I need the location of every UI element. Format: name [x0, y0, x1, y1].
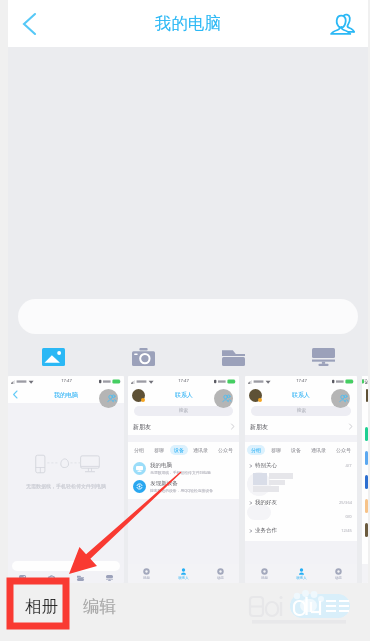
button[interactable]: Screenshot 1 [8, 376, 124, 583]
staticText: 公众号 [218, 447, 233, 453]
staticText: 特别关心 [255, 462, 277, 469]
staticText: 4/7 [345, 463, 352, 468]
staticText: 我的电脑 [155, 13, 221, 34]
button[interactable]: 编辑 [70, 584, 128, 628]
staticText: 设备 [174, 447, 184, 453]
staticText: 业务合作 [255, 527, 277, 534]
staticText: 动态 [217, 576, 224, 580]
staticText: 我的好友 [255, 499, 277, 506]
staticText: 无需数据线，手机轻松传文件到电脑 [150, 470, 211, 475]
button[interactable]: Computer [278, 348, 368, 366]
staticText: 12/45 [341, 528, 352, 533]
staticText: 群聊 [271, 447, 281, 453]
staticText: 联系人 [296, 576, 307, 580]
button[interactable]: Contacts [324, 6, 360, 42]
button[interactable]: Files [188, 348, 278, 366]
staticText: 联系人 [178, 576, 189, 580]
staticText: 25/364 [339, 500, 352, 505]
staticText: 0/0 [345, 514, 352, 519]
staticText: 群聊 [154, 447, 164, 453]
staticText: 通讯录 [193, 447, 208, 453]
staticText: 消息 [143, 576, 150, 580]
staticText: 17:47 [296, 378, 307, 384]
staticText: 我的电脑 [150, 462, 172, 469]
staticText: 设备 [291, 447, 301, 453]
staticText: 编辑 [83, 596, 116, 617]
staticText: 相册 [25, 596, 58, 617]
staticText: 17:47 [178, 378, 189, 384]
button[interactable]: Screenshot 4 [362, 376, 368, 583]
staticText: 分组 [251, 447, 261, 453]
staticText: 17:47 [61, 378, 72, 384]
button[interactable]: Back [10, 5, 48, 43]
button[interactable]: Screenshot 3 [245, 376, 357, 583]
staticText: 17:47 [362, 378, 368, 384]
staticText: 动态 [335, 576, 342, 580]
staticText: 公众号 [336, 447, 351, 453]
staticText: 消息 [261, 576, 268, 580]
button[interactable]: Screenshot 2 [128, 376, 239, 583]
staticText: 分组 [134, 447, 144, 453]
staticText: 新朋友 [133, 423, 151, 431]
button[interactable]: Gallery [8, 348, 98, 366]
staticText: 通讯录 [311, 447, 326, 453]
button[interactable]: 相册 [12, 584, 70, 628]
staticText: 搜索 [179, 408, 188, 414]
staticText: 搜索附近的设备，用QQ轻松连接设备 [150, 488, 213, 493]
staticText: 无需数据线，手机轻松传文件到电脑 [26, 483, 106, 489]
staticText: 联系人 [292, 391, 310, 399]
staticText: 新朋友 [250, 423, 268, 431]
button[interactable]: Camera [98, 348, 188, 366]
staticText: 发现新设备 [150, 480, 178, 487]
staticText: 我的电脑 [54, 391, 78, 399]
staticText: 联系人 [175, 391, 193, 399]
staticText: 搜索 [297, 408, 306, 414]
